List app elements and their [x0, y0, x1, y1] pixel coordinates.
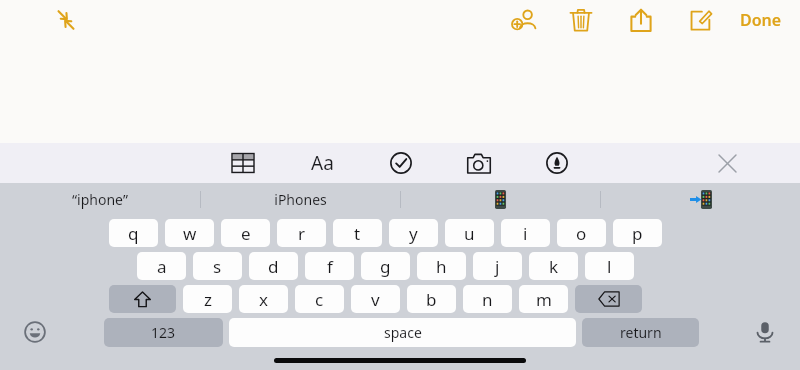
button[interactable]: l: [585, 252, 634, 280]
button[interactable]: h: [417, 252, 466, 280]
button[interactable]: Shift: [109, 285, 176, 313]
staticText: r: [298, 222, 306, 245]
button[interactable]: d: [249, 252, 298, 280]
button[interactable]: [401, 183, 600, 215]
button[interactable]: o: [557, 219, 606, 247]
button[interactable]: space: [229, 318, 576, 347]
button[interactable]: s: [193, 252, 242, 280]
button[interactable]: v: [351, 285, 400, 313]
button[interactable]: Compose: [684, 3, 718, 37]
staticText: j: [495, 255, 500, 278]
button[interactable]: Markup: [538, 144, 576, 182]
staticText: Done: [740, 9, 782, 31]
staticText: h: [436, 255, 447, 278]
button[interactable]: c: [295, 285, 344, 313]
staticText: z: [204, 288, 212, 311]
staticText: “iphone”: [72, 190, 128, 209]
staticText: q: [128, 222, 139, 245]
button[interactable]: return: [582, 318, 699, 347]
staticText: n: [482, 288, 493, 311]
button[interactable]: Emoji: [18, 315, 52, 349]
staticText: v: [371, 288, 380, 311]
button[interactable]: y: [389, 219, 438, 247]
staticText: b: [426, 288, 437, 311]
button[interactable]: z: [183, 285, 232, 313]
button[interactable]: iPhones: [201, 183, 400, 215]
staticText: return: [620, 323, 662, 342]
staticText: g: [380, 255, 391, 278]
staticText: y: [409, 222, 418, 245]
staticText: u: [464, 222, 475, 245]
button[interactable]: Share: [624, 3, 658, 37]
button[interactable]: Table: [224, 144, 262, 182]
staticText: k: [549, 255, 559, 278]
button[interactable]: Dictate: [748, 315, 782, 349]
button[interactable]: j: [473, 252, 522, 280]
button[interactable]: Text format: [302, 143, 342, 183]
staticText: i: [523, 222, 528, 245]
button[interactable]: b: [407, 285, 456, 313]
staticText: 123: [151, 323, 176, 342]
button[interactable]: Done: [734, 5, 788, 35]
button[interactable]: Camera: [460, 144, 498, 182]
button[interactable]: Close keyboard: [710, 146, 744, 180]
button[interactable]: Delete: [564, 3, 598, 37]
button[interactable]: i: [501, 219, 550, 247]
button[interactable]: Add people: [508, 3, 542, 37]
button[interactable]: q: [109, 219, 158, 247]
staticText: p: [632, 222, 643, 245]
button[interactable]: n: [463, 285, 512, 313]
button[interactable]: e: [221, 219, 270, 247]
staticText: c: [315, 288, 324, 311]
staticText: s: [213, 255, 222, 278]
button[interactable]: p: [613, 219, 662, 247]
staticText: e: [241, 222, 251, 245]
staticText: a: [157, 255, 167, 278]
button[interactable]: u: [445, 219, 494, 247]
button[interactable]: Collapse: [46, 0, 86, 40]
button[interactable]: k: [529, 252, 578, 280]
staticText: l: [607, 255, 612, 278]
button[interactable]: Backspace: [575, 285, 642, 313]
button[interactable]: g: [361, 252, 410, 280]
staticText: Aa: [311, 150, 334, 176]
staticText: space: [384, 323, 422, 342]
button[interactable]: w: [165, 219, 214, 247]
staticText: x: [259, 288, 268, 311]
button[interactable]: m: [519, 285, 568, 313]
staticText: f: [327, 255, 333, 278]
button[interactable]: a: [137, 252, 186, 280]
staticText: m: [536, 288, 552, 311]
staticText: iPhones: [274, 190, 327, 209]
staticText: o: [576, 222, 587, 245]
staticText: t: [354, 222, 361, 245]
button[interactable]: Checklist: [382, 144, 420, 182]
button[interactable]: 123: [104, 318, 223, 347]
staticText: w: [183, 222, 197, 245]
button[interactable]: “iphone”: [0, 183, 200, 215]
button[interactable]: [601, 183, 800, 215]
button[interactable]: x: [239, 285, 288, 313]
button[interactable]: f: [305, 252, 354, 280]
button[interactable]: t: [333, 219, 382, 247]
button[interactable]: r: [277, 219, 326, 247]
staticText: d: [268, 255, 279, 278]
